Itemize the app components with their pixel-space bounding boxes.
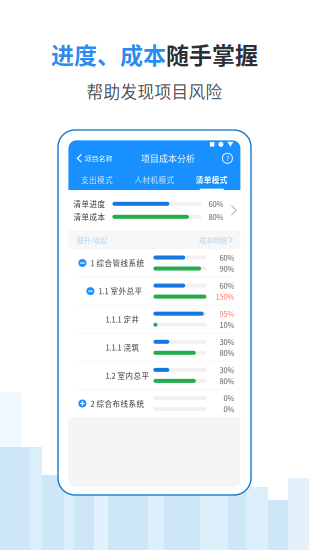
staticText: 清单进度 bbox=[73, 198, 105, 209]
staticText: 30% bbox=[219, 336, 234, 347]
button[interactable]: 1 综合管线系统 bbox=[68, 249, 240, 277]
staticText: 95% bbox=[219, 308, 234, 319]
staticText: 支出模式 bbox=[81, 174, 113, 185]
staticText: 成本明细 bbox=[199, 235, 227, 245]
button[interactable]: 清单进度 bbox=[68, 190, 240, 230]
staticText: 80% bbox=[219, 375, 234, 386]
staticText: 随手掌握 bbox=[166, 37, 258, 71]
button[interactable]: Help bbox=[218, 148, 236, 168]
staticText: 进度、成本 bbox=[51, 37, 166, 71]
button[interactable]: 展开/收起 bbox=[76, 235, 107, 245]
staticText: 10% bbox=[219, 319, 234, 330]
staticText: 帮助发现项目风险 bbox=[86, 79, 222, 103]
button[interactable]: 1.1.1 定井 bbox=[68, 305, 240, 333]
staticText: 80% bbox=[219, 347, 234, 358]
staticText: 清单成本 bbox=[73, 211, 105, 222]
staticText: 30% bbox=[219, 364, 234, 375]
staticText: 2 综合布线系统 bbox=[90, 398, 144, 409]
button[interactable]: 成本明细 bbox=[199, 235, 232, 245]
staticText: ? bbox=[226, 153, 229, 163]
staticText: 人材机模式 bbox=[134, 174, 174, 185]
staticText: 项目成本分析 bbox=[141, 152, 195, 165]
button[interactable]: 项目名称 bbox=[72, 148, 117, 168]
button[interactable]: 2 综合布线系统 bbox=[68, 390, 240, 417]
button[interactable]: 1.1.1 浇筑 bbox=[68, 334, 240, 361]
staticText: 项目名称 bbox=[84, 153, 112, 163]
staticText: 展开/收起 bbox=[76, 235, 107, 245]
staticText: 1 综合管线系统 bbox=[90, 258, 144, 268]
staticText: 1.2 室内总平 bbox=[105, 370, 149, 381]
button[interactable]: 1.2 室内总平 bbox=[68, 362, 240, 389]
staticText: 1.1 室外总平 bbox=[98, 286, 142, 297]
staticText: 0% bbox=[223, 404, 234, 414]
staticText: 60% bbox=[219, 280, 234, 291]
staticText: 1.1.1 定井 bbox=[105, 314, 139, 325]
staticText: 1.1.1 浇筑 bbox=[105, 342, 139, 353]
staticText: 90% bbox=[219, 263, 234, 274]
button[interactable]: 清单模式 bbox=[183, 168, 240, 190]
button[interactable]: 支出模式 bbox=[68, 168, 126, 190]
staticText: 60% bbox=[208, 198, 223, 209]
staticText: 150% bbox=[215, 291, 234, 302]
staticText: 0% bbox=[223, 393, 234, 403]
staticText: 清单模式 bbox=[196, 174, 228, 185]
staticText: 80% bbox=[208, 211, 223, 222]
button[interactable]: 人材机模式 bbox=[126, 168, 183, 190]
staticText: 60% bbox=[219, 252, 234, 263]
button[interactable]: 1.1 室外总平 bbox=[68, 277, 240, 305]
